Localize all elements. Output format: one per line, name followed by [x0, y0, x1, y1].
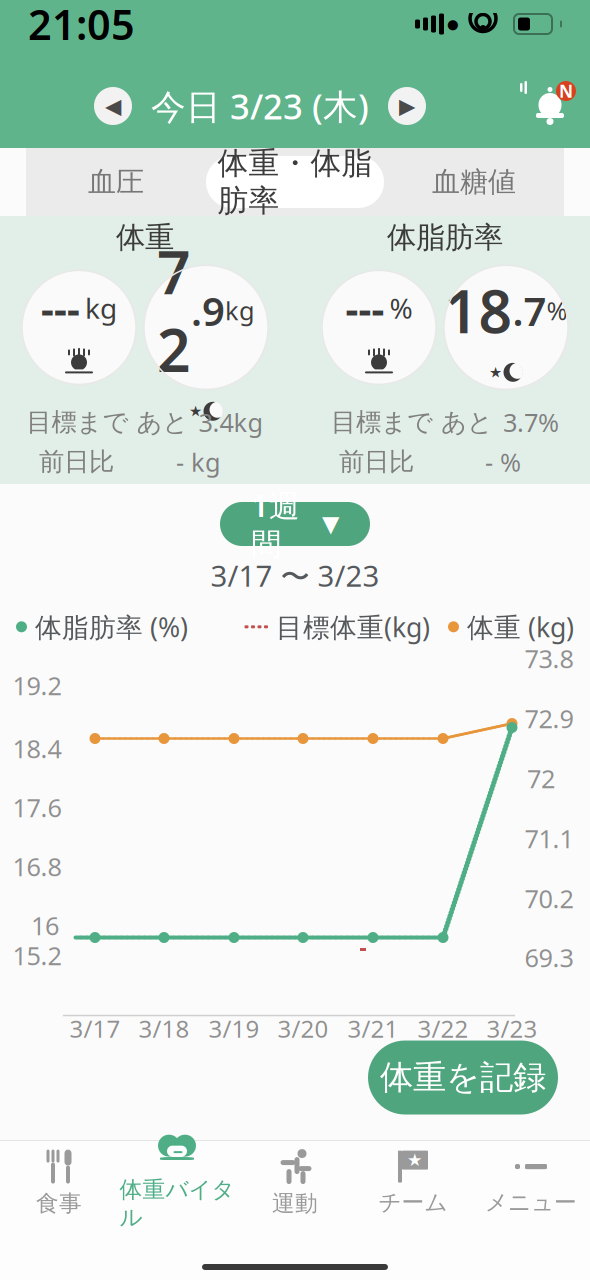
staticText: 目標まで あと	[26, 407, 188, 438]
button[interactable]: 18	[444, 265, 568, 389]
staticText: kg	[225, 294, 255, 327]
button[interactable]: Previous day	[91, 84, 135, 128]
staticText: 体脂肪率	[387, 219, 503, 255]
staticText: 食事	[36, 1190, 82, 1217]
button[interactable]: 体重・体脂肪率	[206, 156, 384, 208]
staticText: 血糖値	[432, 165, 516, 199]
staticText: 72	[527, 762, 555, 795]
staticText: ★	[189, 403, 202, 420]
staticText: 血圧	[88, 165, 144, 199]
staticText: 3/17 〜 3/23	[210, 556, 379, 595]
button[interactable]: 体重を記録	[368, 1040, 558, 1114]
staticText: 18	[444, 271, 512, 349]
staticText: ▶	[399, 94, 415, 118]
staticText: - %	[485, 445, 521, 479]
staticText: 72	[157, 232, 191, 388]
staticText: 3/22	[417, 1013, 468, 1044]
button[interactable]: 1週間	[220, 502, 370, 546]
staticText: 3/23	[486, 1013, 537, 1044]
button[interactable]: 血糖値	[384, 157, 564, 207]
staticText: 体重を記録	[380, 1057, 546, 1098]
staticText: 70.2	[524, 882, 573, 915]
staticText: 体脂肪率 (%)	[35, 609, 188, 644]
button[interactable]: ---	[322, 270, 436, 384]
button[interactable]: ★	[354, 1144, 472, 1222]
button[interactable]: 運動	[236, 1144, 354, 1222]
staticText: 15.2	[12, 939, 61, 972]
staticText: 3/18	[138, 1013, 189, 1044]
staticText: 体重 (kg)	[467, 609, 574, 644]
staticText: ★	[489, 364, 502, 381]
button[interactable]: 血圧	[26, 157, 206, 207]
staticText: 69.3	[524, 941, 573, 974]
staticText: 体重	[116, 219, 174, 255]
staticText: 体重・体脂肪率	[217, 144, 372, 220]
staticText: 3.7%	[503, 405, 559, 439]
staticText: 1週間	[251, 485, 300, 563]
staticText: 21:05	[28, 0, 135, 51]
staticText: 71.1	[524, 822, 573, 855]
button[interactable]: 72	[144, 265, 268, 389]
staticText: 3/17	[69, 1013, 120, 1044]
staticText: kg	[85, 289, 117, 326]
staticText: 前日比	[39, 446, 114, 477]
staticText: - kg	[176, 445, 221, 479]
button[interactable]: メニュー	[472, 1144, 590, 1222]
button[interactable]: 食事	[0, 1144, 118, 1222]
staticText: 16	[31, 909, 59, 942]
staticText: 18.4	[12, 732, 61, 765]
staticText: 前日比	[339, 446, 414, 477]
staticText: %	[389, 289, 412, 326]
staticText: ●	[447, 16, 459, 31]
staticText: 3.4kg	[198, 405, 263, 439]
button[interactable]: 体重バイタル	[118, 1144, 236, 1222]
staticText: 目標体重(kg)	[276, 609, 430, 644]
staticText: メニュー	[485, 1189, 577, 1216]
staticText: N	[559, 79, 573, 102]
staticText: 目標まで あと	[331, 407, 493, 438]
button[interactable]: ---	[22, 270, 136, 384]
button[interactable]: Next day	[385, 84, 429, 128]
staticText: ---	[41, 281, 80, 334]
staticText: 体重バイタル	[119, 1176, 234, 1231]
staticText: .9	[191, 284, 225, 337]
staticText: チーム	[378, 1189, 447, 1216]
staticText: 運動	[272, 1190, 318, 1217]
staticText: .7	[512, 284, 546, 337]
staticText: ---	[345, 281, 384, 334]
button[interactable]: Notifications	[520, 78, 580, 134]
staticText: 3/20	[277, 1013, 328, 1044]
staticText: 73.8	[524, 642, 573, 675]
staticText: 3/21	[347, 1013, 398, 1044]
staticText: 16.8	[12, 850, 61, 883]
staticText: ★	[407, 1150, 423, 1170]
staticText: 19.2	[12, 669, 61, 702]
staticText: 3/19	[208, 1013, 259, 1044]
staticText: 17.6	[12, 791, 61, 824]
staticText: ▼	[322, 511, 339, 537]
staticText: 72.9	[524, 702, 573, 735]
staticText: 今日 3/23 (木)	[151, 83, 369, 129]
staticText: ◀	[105, 94, 121, 118]
staticText: %	[546, 294, 567, 327]
